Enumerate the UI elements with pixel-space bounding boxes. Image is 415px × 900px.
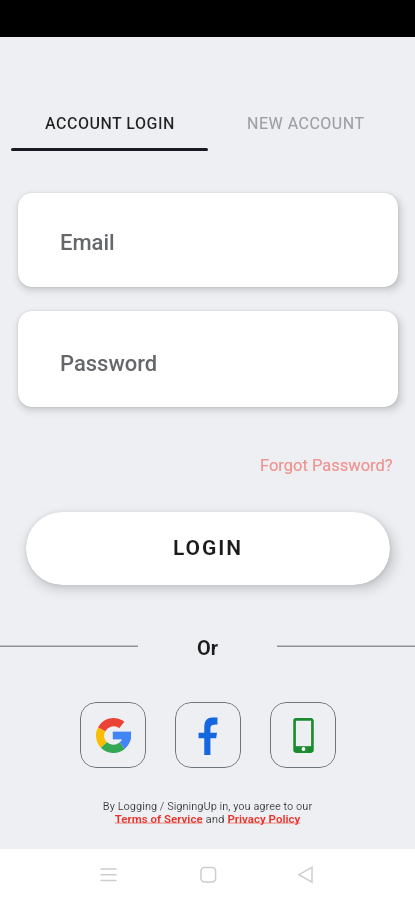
- staticText: By Logging / SigningUp in, you agree to …: [0, 800, 415, 813]
- button[interactable]: Forgot Password?: [260, 456, 393, 475]
- staticText: Password: [60, 351, 158, 377]
- button[interactable]: Sign in with phone: [270, 702, 336, 768]
- button[interactable]: Email: [18, 193, 398, 287]
- staticText: Or: [197, 636, 219, 659]
- staticText: ACCOUNT LOGIN: [45, 114, 175, 133]
- staticText: NEW ACCOUNT: [247, 114, 365, 133]
- staticText: Email: [60, 230, 115, 256]
- button[interactable]: LOGIN: [26, 512, 390, 585]
- button[interactable]: Sign in with Google: [80, 702, 146, 768]
- button[interactable]: ACCOUNT LOGIN: [0, 108, 219, 138]
- button[interactable]: Sign in with Facebook: [175, 702, 241, 768]
- staticText: Forgot Password?: [260, 456, 393, 475]
- button[interactable]: NEW ACCOUNT: [219, 108, 393, 138]
- staticText: Terms of Service and Privacy Policy: [0, 812, 415, 825]
- staticText: LOGIN: [173, 536, 243, 561]
- button[interactable]: Password: [18, 311, 398, 407]
